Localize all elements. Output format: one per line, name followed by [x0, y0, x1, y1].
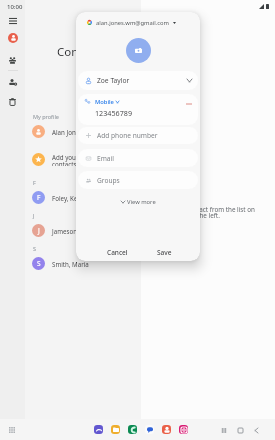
staticText: Add your contacts [52, 153, 79, 166]
button[interactable]: Camera [179, 425, 188, 434]
staticText: Groups [97, 176, 120, 185]
staticText: Jameson [52, 227, 77, 235]
staticText: F [37, 193, 41, 202]
button[interactable]: Groups [78, 171, 198, 189]
button[interactable]: Add phone number [78, 127, 198, 144]
staticText: View more [127, 198, 156, 206]
button[interactable]: Change photo [126, 38, 151, 63]
staticText: Smith, Maria [52, 260, 89, 268]
button[interactable]: Cancel [104, 246, 130, 259]
staticText: alan.jones.wm@gmail.com [96, 19, 170, 27]
staticText: Cancel [107, 248, 128, 257]
button[interactable]: Groups [6, 54, 19, 67]
button[interactable]: Mobile [78, 94, 198, 125]
staticText: My profile [33, 113, 59, 120]
button[interactable]: Suggestions [6, 76, 19, 89]
button[interactable]: Back [250, 424, 262, 436]
staticText: Contacts [57, 44, 105, 60]
button[interactable]: F [25, 191, 141, 204]
button[interactable]: Recents [218, 424, 230, 436]
staticText: J [38, 226, 40, 235]
button[interactable]: All apps [6, 424, 18, 436]
staticText: S [33, 245, 37, 252]
staticText: Zoe Taylor [97, 76, 130, 85]
button[interactable]: Contacts [8, 33, 18, 43]
staticText: Select a contact from the list on the le… [162, 205, 255, 220]
button[interactable]: Add your contacts [25, 153, 141, 166]
staticText: Foley, Ke [52, 194, 78, 202]
button[interactable]: Messages [145, 425, 154, 434]
button[interactable]: View more [117, 196, 160, 208]
staticText: Save [157, 248, 172, 257]
button[interactable]: alan.jones.wm@gmail.com [76, 17, 200, 28]
staticText: J [33, 212, 35, 219]
button[interactable]: Menu [6, 14, 19, 27]
staticText: Add phone number [97, 131, 158, 140]
staticText: F [33, 179, 36, 186]
button[interactable]: Browser [94, 425, 103, 434]
button[interactable]: Trash [6, 95, 19, 108]
button[interactable]: Files [111, 425, 120, 434]
button[interactable]: J [25, 224, 141, 237]
staticText: Alan Jones [52, 128, 83, 136]
button[interactable]: Zoe Taylor [78, 71, 198, 90]
button[interactable]: Home [234, 424, 246, 436]
staticText: Mobile [95, 98, 114, 106]
button[interactable]: Alan Jones [25, 125, 141, 138]
staticText: S [37, 259, 41, 268]
button[interactable]: Email [78, 149, 198, 167]
button[interactable]: S [25, 257, 141, 270]
staticText: 123456789 [95, 108, 133, 118]
button[interactable]: Phone [128, 425, 137, 434]
staticText: 10:00 [7, 3, 23, 11]
staticText: Email [97, 154, 114, 163]
button[interactable]: Save [152, 246, 176, 259]
button[interactable]: Contacts [162, 425, 171, 434]
